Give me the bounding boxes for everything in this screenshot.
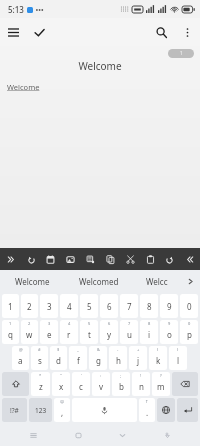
- staticText: ": [60, 373, 62, 378]
- button[interactable]: 9: [160, 320, 178, 344]
- button[interactable]: 2: [21, 294, 38, 318]
- button[interactable]: More options: [174, 19, 200, 45]
- staticText: 7: [128, 321, 131, 326]
- staticText: d: [56, 355, 61, 366]
- staticText: !?#: [10, 406, 19, 415]
- button[interactable]: *: [31, 372, 50, 396]
- staticText: f: [77, 355, 80, 366]
- button[interactable]: Paste: [141, 250, 159, 268]
- button[interactable]: 4: [60, 320, 78, 344]
- button[interactable]: Insert image: [61, 250, 79, 268]
- staticText: .: [146, 407, 149, 418]
- staticText: c: [79, 381, 83, 392]
- staticText: 5: [87, 301, 92, 312]
- button[interactable]: Undo: [22, 250, 40, 268]
- button[interactable]: 7: [120, 320, 138, 344]
- button[interactable]: &: [89, 346, 107, 370]
- button[interactable]: 5: [80, 294, 98, 318]
- button[interactable]: 1: [168, 49, 194, 58]
- staticText: p: [187, 329, 192, 340]
- button[interactable]: 123: [29, 398, 52, 422]
- button[interactable]: Home: [67, 424, 89, 446]
- button[interactable]: 3: [40, 320, 58, 344]
- button[interactable]: Welcomed: [65, 270, 133, 292]
- button[interactable]: Select all: [81, 250, 99, 268]
- staticText: ;: [120, 373, 122, 378]
- button[interactable]: !: [132, 372, 150, 396]
- staticText: !: [140, 373, 142, 378]
- button[interactable]: Welcome: [0, 270, 65, 292]
- button[interactable]: 6: [100, 320, 118, 344]
- staticText: 3: [48, 321, 51, 326]
- button[interactable]: 0: [180, 294, 198, 318]
- button[interactable]: Space: [72, 398, 137, 422]
- button[interactable]: Recent apps: [22, 424, 44, 446]
- button[interactable]: Welcc: [133, 270, 180, 292]
- button[interactable]: Change language: [157, 398, 175, 422]
- button[interactable]: Done: [26, 19, 52, 45]
- staticText: 6: [108, 321, 111, 326]
- button[interactable]: 0: [180, 320, 198, 344]
- button[interactable]: 7: [120, 294, 138, 318]
- button[interactable]: 8: [140, 294, 158, 318]
- staticText: Welcome: [78, 59, 122, 73]
- button[interactable]: #: [31, 346, 48, 370]
- button[interactable]: +: [129, 346, 147, 370]
- button[interactable]: ": [52, 372, 70, 396]
- button[interactable]: -: [109, 346, 127, 370]
- button[interactable]: 9: [160, 294, 178, 318]
- button[interactable]: ;: [112, 372, 130, 396]
- staticText: 9: [168, 321, 171, 326]
- button[interactable]: ): [169, 346, 187, 370]
- button[interactable]: 6: [100, 294, 118, 318]
- staticText: n: [139, 381, 144, 392]
- button[interactable]: :: [92, 372, 110, 396]
- staticText: w: [26, 329, 33, 340]
- staticText: h: [116, 355, 121, 366]
- button[interactable]: Shift: [2, 372, 29, 396]
- button[interactable]: $: [50, 346, 67, 370]
- staticText: ?: [160, 373, 162, 378]
- button[interactable]: 1: [2, 320, 19, 344]
- staticText: a: [18, 355, 23, 366]
- button[interactable]: ': [72, 372, 90, 396]
- button[interactable]: Calendar: [41, 250, 59, 268]
- button[interactable]: Next: [180, 250, 198, 268]
- staticText: -: [117, 347, 119, 352]
- button[interactable]: Cut: [121, 250, 139, 268]
- button[interactable]: ☺: [54, 398, 70, 422]
- staticText: b: [119, 381, 124, 392]
- button[interactable]: Hide keyboard: [111, 424, 133, 446]
- staticText: j: [137, 355, 140, 366]
- button[interactable]: ?: [152, 372, 170, 396]
- staticText: :: [100, 373, 102, 378]
- button[interactable]: Backspace: [172, 372, 198, 396]
- button[interactable]: 4: [60, 294, 78, 318]
- button[interactable]: More suggestions: [180, 270, 200, 292]
- button[interactable]: Redo: [160, 250, 178, 268]
- button[interactable]: Keyboard settings: [156, 424, 178, 446]
- button[interactable]: 1: [2, 294, 19, 318]
- button[interactable]: @: [12, 346, 29, 370]
- staticText: 4: [67, 301, 72, 312]
- staticText: q: [8, 329, 13, 340]
- button[interactable]: Search: [148, 19, 174, 45]
- button[interactable]: (: [149, 346, 167, 370]
- button[interactable]: 5: [80, 320, 98, 344]
- button[interactable]: Copy: [101, 250, 119, 268]
- staticText: Welcomed: [79, 276, 119, 287]
- staticText: &: [97, 347, 100, 352]
- staticText: *: [39, 373, 42, 378]
- button[interactable]: _: [69, 346, 87, 370]
- staticText: t: [88, 329, 91, 340]
- button[interactable]: ↑: [139, 398, 155, 422]
- staticText: (: [157, 347, 159, 352]
- button[interactable]: 3: [40, 294, 58, 318]
- button[interactable]: Enter: [177, 398, 198, 422]
- button[interactable]: !?#: [2, 398, 27, 422]
- button[interactable]: 2: [21, 320, 38, 344]
- button[interactable]: Previous: [2, 250, 20, 268]
- button[interactable]: Menu: [0, 19, 26, 45]
- staticText: 6: [107, 301, 112, 312]
- button[interactable]: 8: [140, 320, 158, 344]
